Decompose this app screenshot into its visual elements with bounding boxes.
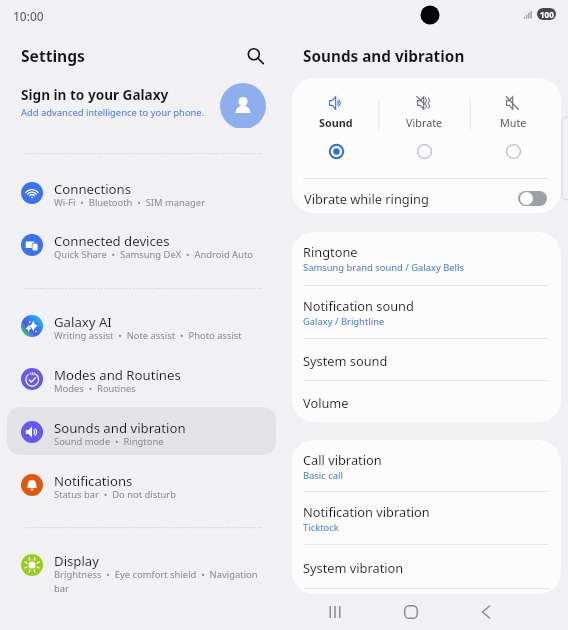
staticText: Basic call <box>303 469 343 482</box>
staticText: Brightness • Eye comfort shield • Naviga… <box>54 568 268 595</box>
staticText: Notification vibration <box>303 503 430 520</box>
staticText: 100 <box>540 9 554 20</box>
button[interactable]: Galaxy AI <box>7 301 276 349</box>
button[interactable]: Vibrate <box>382 90 466 135</box>
staticText: Vibrate while ringing <box>304 190 429 207</box>
staticText: Samsung brand sound / Galaxy Bells <box>303 261 464 274</box>
staticText: Sign in to your Galaxy <box>21 85 169 104</box>
button[interactable]: Sign in to your Galaxy <box>8 82 276 128</box>
button[interactable]: System sound <box>292 339 561 381</box>
staticText: Notification sound <box>303 297 414 314</box>
staticText: Add advanced intelligence to your phone. <box>21 106 205 119</box>
staticText: Connections <box>54 180 131 198</box>
button[interactable]: Display <box>7 540 276 602</box>
button[interactable]: Vibrate while ringing <box>292 179 561 213</box>
staticText: Modes and Routines <box>54 366 181 384</box>
staticText: Vibrate <box>406 115 443 130</box>
button[interactable]: Not selected <box>407 137 441 166</box>
staticText: Ringtone <box>303 243 358 260</box>
staticText: System vibration <box>303 559 404 576</box>
staticText: Volume <box>303 394 349 411</box>
button[interactable]: Connected devices <box>7 220 276 268</box>
button[interactable]: Home <box>391 594 431 630</box>
staticText: Sound <box>319 115 353 130</box>
staticText: Modes • Routines <box>54 382 268 395</box>
staticText: Writing assist • Note assist • Photo ass… <box>54 329 268 342</box>
staticText: Notifications <box>54 472 133 490</box>
staticText: Sound mode • Ringtone <box>54 435 268 448</box>
button[interactable]: Ringtone <box>292 232 561 286</box>
button[interactable]: Sound <box>294 90 378 135</box>
button[interactable]: System vibration <box>292 545 561 589</box>
staticText: Call vibration <box>303 451 382 468</box>
button[interactable]: Selected <box>319 137 353 166</box>
staticText: Mute <box>500 115 527 130</box>
button[interactable]: Notification vibration <box>292 492 561 545</box>
staticText: Connected devices <box>54 232 170 250</box>
button[interactable]: Notification sound <box>292 286 561 339</box>
button[interactable]: Search <box>240 40 272 72</box>
button[interactable]: Vibrate while ringing switch <box>518 191 547 206</box>
button[interactable]: Volume <box>292 381 561 422</box>
button[interactable]: Recents <box>315 594 355 630</box>
staticText: Sounds and vibration <box>54 419 186 437</box>
button[interactable]: Notifications <box>7 460 276 508</box>
button[interactable]: Connections <box>7 168 276 216</box>
staticText: System sound <box>303 352 388 369</box>
button[interactable]: Not selected <box>496 137 530 166</box>
staticText: Galaxy AI <box>54 313 112 331</box>
staticText: Ticktock <box>303 521 339 534</box>
button[interactable]: Call vibration <box>292 440 561 492</box>
staticText: Status bar • Do not disturb <box>54 488 268 501</box>
staticText: Sounds and vibration <box>303 46 465 67</box>
staticText: Display <box>54 552 99 570</box>
staticText: Wi-Fi • Bluetooth • SIM manager <box>54 196 268 209</box>
staticText: 10:00 <box>13 8 44 24</box>
staticText: Galaxy / Brightline <box>303 315 385 328</box>
button[interactable]: Sounds and vibration <box>7 407 276 455</box>
button[interactable]: Modes and Routines <box>7 354 276 402</box>
button[interactable]: Back <box>466 594 506 630</box>
button[interactable]: Mute <box>471 90 555 135</box>
staticText: Quick Share • Samsung DeX • Android Auto <box>54 248 268 261</box>
staticText: Settings <box>21 45 85 66</box>
